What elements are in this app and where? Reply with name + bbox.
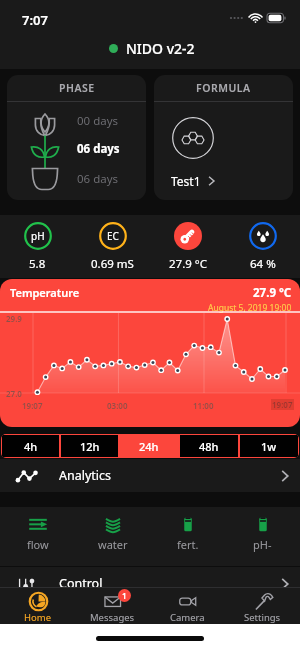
staticText: flow	[27, 537, 49, 552]
staticText: PHASE	[59, 81, 95, 95]
button[interactable]: 24h	[120, 435, 178, 457]
button[interactable]: EC	[75, 215, 150, 278]
staticText: Control	[59, 575, 103, 592]
staticText: EC	[107, 229, 119, 243]
staticText: 00 days	[77, 113, 119, 129]
staticText: 19:07	[272, 399, 293, 410]
button[interactable]: 48h	[180, 435, 238, 457]
staticText: 1w	[261, 439, 277, 454]
staticText: Messages	[90, 611, 135, 624]
button[interactable]: 27.9 °C	[150, 215, 225, 278]
staticText: water	[98, 537, 128, 552]
staticText: fert.	[177, 537, 199, 552]
staticText: Analytics	[59, 467, 112, 484]
staticText: Camera	[170, 611, 205, 624]
staticText: NIDO v2-2	[126, 39, 195, 58]
button[interactable]: Temperature	[0, 279, 300, 427]
staticText: 7:07	[22, 11, 48, 29]
staticText: 03:00	[107, 400, 128, 411]
button[interactable]: water	[75, 507, 150, 566]
staticText: pH	[31, 229, 45, 243]
staticText: 11:00	[193, 400, 214, 411]
button[interactable]: flow	[0, 507, 75, 566]
staticText: 27.9 °C	[253, 285, 292, 301]
button[interactable]: 1w	[240, 435, 298, 457]
button[interactable]: PHASE	[7, 75, 146, 200]
staticText: FORMULA	[196, 81, 251, 95]
staticText: 64 %	[250, 256, 276, 272]
staticText: 4h	[24, 439, 38, 454]
button[interactable]: 4h	[2, 435, 59, 457]
staticText: 1	[122, 590, 127, 601]
staticText: 29.9	[6, 313, 22, 324]
staticText: 12h	[80, 439, 100, 454]
button[interactable]: Control	[0, 567, 300, 600]
staticText: 5.8	[29, 256, 46, 272]
staticText: 24h	[139, 439, 159, 454]
staticText: 06 days	[77, 171, 119, 187]
staticText: pH-	[253, 537, 272, 552]
staticText: August 5, 2019 19:00	[208, 302, 292, 314]
button[interactable]: Messages	[75, 588, 150, 624]
staticText: Home	[24, 611, 52, 624]
button[interactable]: Camera	[150, 588, 225, 624]
button[interactable]: 64 %	[225, 215, 300, 278]
button[interactable]: Settings	[225, 588, 300, 624]
button[interactable]: Home	[0, 588, 75, 624]
button[interactable]: pH-	[225, 507, 300, 566]
button[interactable]: FORMULA	[154, 75, 293, 200]
staticText: 06 days	[77, 141, 120, 157]
staticText: 27.0	[6, 388, 22, 399]
button[interactable]: fert.	[150, 507, 225, 566]
button[interactable]: 12h	[61, 435, 118, 457]
button[interactable]: Analytics	[0, 459, 300, 492]
staticText: Temperature	[10, 285, 80, 300]
staticText: 27.9 °C	[169, 256, 207, 272]
staticText: 0.69 mS	[91, 256, 134, 272]
staticText: 19:07	[22, 400, 43, 411]
staticText: 48h	[199, 439, 219, 454]
button[interactable]: pH	[0, 215, 75, 278]
staticText: Settings	[244, 611, 281, 624]
staticText: Test1	[171, 173, 201, 189]
